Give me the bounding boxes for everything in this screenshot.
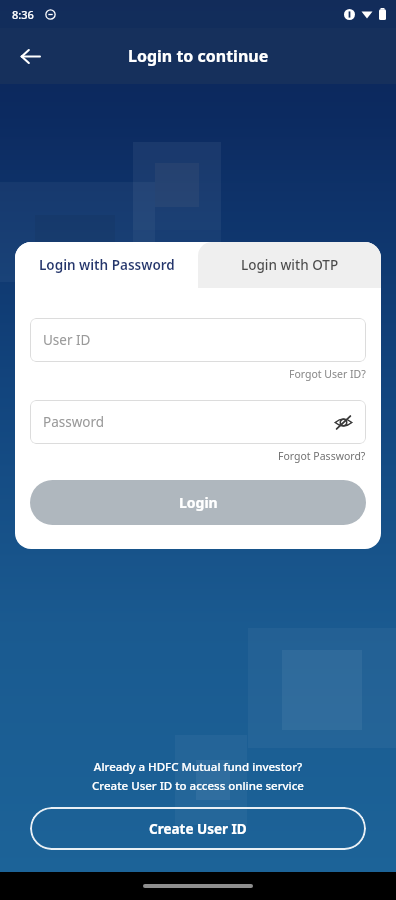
staticText: Forgot User ID? [289, 367, 366, 381]
staticText: Login [179, 493, 218, 512]
button[interactable]: Back [8, 34, 52, 78]
button[interactable]: Login with OTP [198, 242, 381, 288]
button[interactable]: Login with Password [15, 242, 198, 288]
staticText: 8:36 [12, 7, 34, 22]
staticText: Password [43, 413, 105, 431]
staticText: User ID [43, 331, 91, 349]
staticText: Forgot Password? [278, 449, 366, 463]
button[interactable]: Login [30, 480, 366, 525]
staticText: Login to continue [128, 45, 269, 67]
staticText: Create User ID [149, 820, 247, 838]
button[interactable]: Password [30, 400, 366, 444]
staticText: Login with Password [39, 256, 175, 274]
button[interactable]: Create User ID [30, 807, 366, 850]
staticText: Create User ID to access online service [30, 778, 366, 794]
staticText: Login with OTP [241, 256, 339, 274]
button[interactable]: Forgot Password? [30, 449, 366, 463]
button[interactable]: Show password [328, 407, 358, 437]
staticText: Already a HDFC Mutual fund investor? [30, 759, 366, 775]
button[interactable]: User ID [30, 318, 366, 362]
button[interactable]: Forgot User ID? [30, 367, 366, 381]
